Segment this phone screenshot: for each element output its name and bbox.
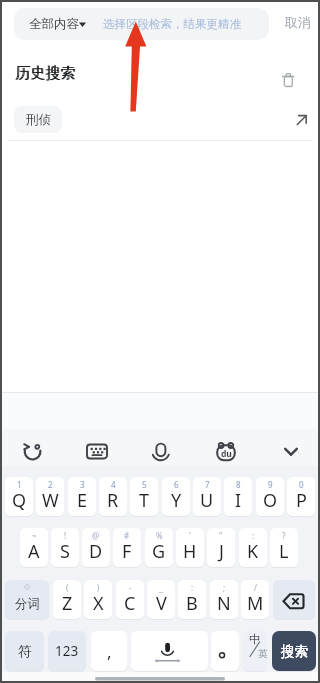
staticText: 中: [249, 632, 261, 646]
button[interactable]: [273, 580, 315, 619]
staticText: 3: [80, 479, 85, 490]
staticText: 历史搜索: [16, 64, 76, 83]
button[interactable]: 0: [287, 477, 315, 516]
button[interactable]: 5: [130, 477, 158, 516]
staticText: 选择区段检索，结果更精准: [103, 17, 241, 31]
staticText: V: [156, 591, 167, 616]
button[interactable]: 3: [68, 477, 96, 516]
staticText: Z: [62, 591, 73, 616]
staticText: 5: [142, 479, 147, 490]
button[interactable]: 8: [224, 477, 252, 516]
button[interactable]: 符: [5, 631, 44, 671]
staticText: Y: [171, 488, 182, 513]
staticText: 搜索: [281, 643, 308, 660]
staticText: ~: [32, 530, 37, 541]
staticText: #: [124, 530, 130, 541]
button[interactable]: (: [53, 580, 81, 619]
button[interactable]: /: [241, 580, 269, 619]
button[interactable]: -: [116, 580, 144, 619]
staticText: ": [219, 530, 223, 541]
button[interactable]: ?: [270, 528, 298, 567]
button[interactable]: ◇: [5, 580, 49, 619]
staticText: G: [152, 539, 166, 564]
staticText: U: [200, 488, 214, 513]
staticText: 4: [111, 479, 116, 490]
button[interactable]: [210, 436, 238, 462]
staticText: R: [107, 488, 119, 513]
staticText: O: [263, 488, 278, 513]
button[interactable]: 6: [162, 477, 190, 516]
staticText: 7: [205, 479, 210, 490]
staticText: 0: [299, 479, 304, 490]
button[interactable]: @: [82, 528, 110, 567]
button[interactable]: ,: [91, 631, 127, 671]
button[interactable]: 2: [36, 477, 64, 516]
staticText: du: [221, 448, 232, 459]
staticText: !: [64, 530, 67, 541]
button[interactable]: :: [178, 580, 206, 619]
button[interactable]: _: [147, 580, 175, 619]
staticText: _: [159, 582, 163, 593]
staticText: ): [97, 582, 100, 593]
staticText: 取消: [285, 14, 311, 30]
staticText: P: [296, 488, 307, 513]
button[interactable]: [131, 631, 208, 671]
staticText: @: [92, 530, 100, 541]
staticText: K: [247, 539, 259, 564]
staticText: 8: [236, 479, 241, 490]
staticText: -: [129, 582, 132, 593]
staticText: S: [60, 539, 70, 564]
staticText: N: [217, 591, 231, 616]
button[interactable]: 刑侦: [14, 106, 62, 133]
button[interactable]: %: [145, 528, 173, 567]
staticText: 6: [174, 479, 179, 490]
button[interactable]: 1: [5, 477, 33, 516]
staticText: J: [219, 539, 224, 564]
staticText: 123: [55, 642, 79, 660]
button[interactable]: #: [113, 528, 141, 567]
button[interactable]: [293, 108, 313, 128]
staticText: M: [247, 591, 264, 616]
button[interactable]: 123: [48, 631, 86, 671]
button[interactable]: [243, 631, 267, 671]
button[interactable]: ;: [210, 580, 238, 619]
staticText: 全部内容: [29, 16, 79, 32]
button[interactable]: :: [239, 528, 267, 567]
button[interactable]: 9: [256, 477, 284, 516]
staticText: ;: [223, 582, 226, 593]
staticText: Q: [12, 488, 27, 513]
button[interactable]: ~: [20, 528, 48, 567]
staticText: /: [254, 582, 257, 593]
staticText: 2: [48, 479, 53, 490]
button[interactable]: [146, 436, 174, 462]
button[interactable]: [211, 631, 239, 671]
staticText: H: [183, 539, 197, 564]
button[interactable]: ": [207, 528, 235, 567]
button[interactable]: !: [51, 528, 79, 567]
button[interactable]: 7: [193, 477, 221, 516]
button[interactable]: 4: [99, 477, 127, 516]
button[interactable]: [279, 69, 297, 89]
staticText: ?: [282, 530, 286, 541]
staticText: 英: [258, 648, 268, 660]
button[interactable]: [274, 436, 302, 462]
button[interactable]: [14, 8, 269, 40]
button[interactable]: 搜索: [272, 631, 316, 671]
button[interactable]: ': [176, 528, 204, 567]
staticText: 历史搜索: [15, 64, 75, 83]
staticText: L: [279, 539, 289, 564]
staticText: D: [89, 539, 103, 564]
button[interactable]: [82, 436, 110, 462]
staticText: (: [66, 582, 69, 593]
staticText: 9: [268, 479, 273, 490]
staticText: ◇: [24, 582, 31, 591]
staticText: ,: [107, 640, 112, 663]
staticText: 符: [18, 643, 32, 660]
staticText: 刑侦: [26, 112, 51, 128]
button[interactable]: ): [84, 580, 112, 619]
staticText: 1: [17, 479, 22, 490]
button[interactable]: [18, 436, 46, 462]
staticText: 搜索: [281, 643, 308, 660]
button[interactable]: 取消: [283, 10, 313, 34]
staticText: ': [189, 530, 191, 541]
